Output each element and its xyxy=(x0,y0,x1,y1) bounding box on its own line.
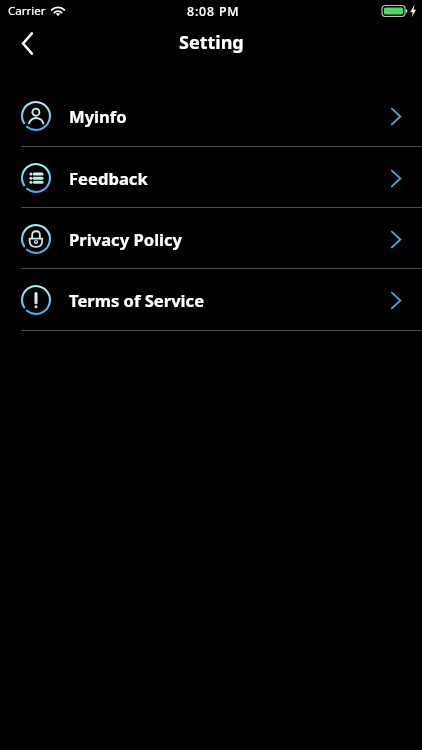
button[interactable]: Myinfo xyxy=(0,85,422,145)
staticText: Terms of Service xyxy=(69,289,205,312)
staticText: Setting xyxy=(179,30,244,55)
button[interactable]: Terms of Service xyxy=(0,269,422,329)
button[interactable]: Privacy Policy xyxy=(0,208,422,268)
staticText: Feedback xyxy=(69,167,148,190)
staticText: Carrier xyxy=(8,3,46,19)
staticText: 8:08 PM xyxy=(187,3,240,20)
staticText: Myinfo xyxy=(69,105,127,128)
button[interactable]: Feedback xyxy=(0,147,422,207)
button[interactable]: Back xyxy=(0,22,48,63)
staticText: Privacy Policy xyxy=(69,228,183,251)
